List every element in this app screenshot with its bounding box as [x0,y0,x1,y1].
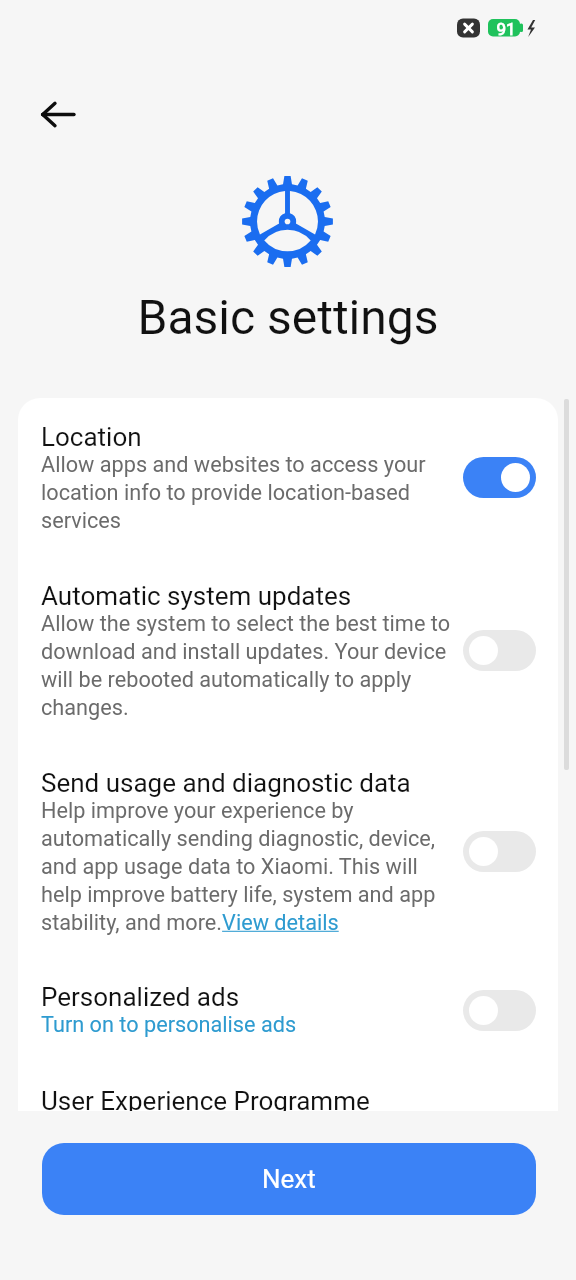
button[interactable]: Toggle [463,831,536,872]
button[interactable]: Toggle [463,457,536,498]
button[interactable]: Back [30,87,85,142]
staticText: Allow apps and websites to access your l… [41,452,455,533]
button[interactable]: User Experience Programme [18,1062,558,1111]
staticText: Basic settings [0,289,576,345]
staticText: Next [262,1164,316,1194]
button[interactable]: Location [18,398,558,550]
button[interactable]: Toggle [463,990,536,1031]
staticText: Allow the system to select the best time… [41,611,455,720]
staticText: Automatic system updates [41,581,352,611]
staticText: Turn on to personalise ads [41,1012,297,1037]
staticText: Personalized ads [41,982,240,1012]
staticText: 91 [492,19,520,39]
button[interactable]: Send usage and diagnostic data [18,742,558,964]
button[interactable]: Next [42,1143,536,1215]
button[interactable]: Toggle [463,630,536,671]
button[interactable]: Personalized ads [18,964,558,1062]
staticText: User Experience Programme [41,1086,370,1111]
button[interactable]: Automatic system updates [18,550,558,742]
staticText: Location [41,422,142,452]
staticText: Send usage and diagnostic data [41,768,411,798]
staticText: Help improve your experience by automati… [41,798,455,935]
